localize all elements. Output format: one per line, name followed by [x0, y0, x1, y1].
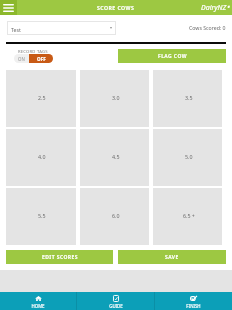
- staticText: ON: [18, 56, 25, 62]
- staticText: GUIDE: [109, 303, 123, 309]
- staticText: HOME: [31, 303, 45, 309]
- button[interactable]: 4.0: [6, 129, 76, 186]
- button[interactable]: ON: [14, 54, 29, 63]
- staticText: FLAG COW: [158, 53, 187, 60]
- button[interactable]: Open navigation menu: [0, 0, 17, 15]
- button[interactable]: 3.5: [153, 70, 222, 127]
- button[interactable]: HOME: [0, 292, 76, 310]
- staticText: 5.5: [38, 212, 46, 219]
- button[interactable]: Test: [7, 21, 116, 35]
- button[interactable]: 6.5 +: [153, 188, 222, 245]
- button[interactable]: 4.5: [80, 129, 149, 186]
- button[interactable]: 6.0: [80, 188, 149, 245]
- button[interactable]: EDIT SCORES: [6, 250, 113, 264]
- staticText: RECORD TAGS: [18, 49, 48, 55]
- staticText: Test: [11, 26, 21, 33]
- staticText: SCORE COWS: [97, 4, 135, 11]
- staticText: 4.0: [38, 153, 46, 160]
- button[interactable]: 5.0: [153, 129, 222, 186]
- button[interactable]: GUIDE: [77, 292, 154, 310]
- button[interactable]: FINISH: [155, 292, 232, 310]
- staticText: Cows Scored: 0: [189, 24, 226, 31]
- staticText: 6.0: [112, 212, 120, 219]
- staticText: 4.5: [112, 153, 120, 160]
- staticText: 3.0: [112, 94, 120, 101]
- staticText: FINISH: [186, 303, 201, 309]
- staticText: DairyNZ: [201, 3, 227, 13]
- button[interactable]: SAVE: [118, 250, 226, 264]
- staticText: EDIT SCORES: [42, 254, 78, 261]
- staticText: OFF: [37, 56, 46, 62]
- staticText: SAVE: [165, 254, 179, 261]
- button[interactable]: FLAG COW: [118, 49, 226, 63]
- button[interactable]: 2.5: [6, 70, 76, 127]
- staticText: 2.5: [38, 94, 46, 101]
- button[interactable]: 3.0: [80, 70, 149, 127]
- button[interactable]: OFF: [29, 54, 53, 63]
- staticText: 6.5 +: [183, 212, 195, 219]
- button[interactable]: 5.5: [6, 188, 76, 245]
- staticText: 5.0: [185, 153, 193, 160]
- staticText: 3.5: [185, 94, 193, 101]
